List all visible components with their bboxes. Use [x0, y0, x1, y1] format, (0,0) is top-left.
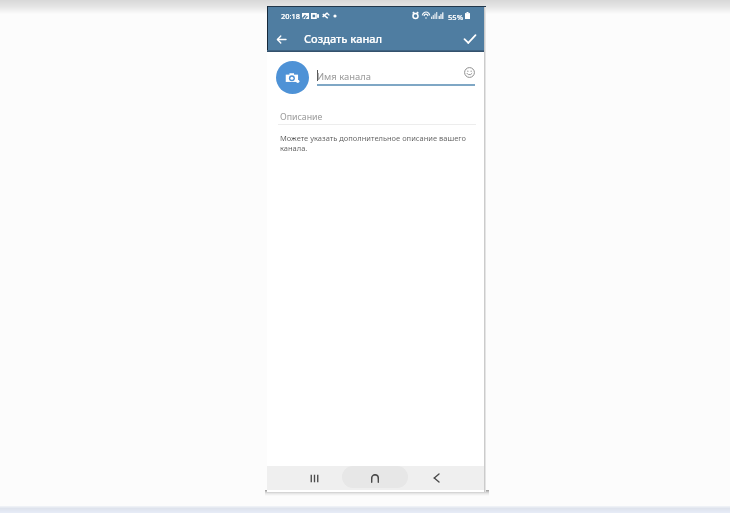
staticText: Создать канал [304, 31, 383, 46]
button[interactable]: Back [415, 466, 458, 490]
staticText: Имя канала [317, 70, 371, 83]
button[interactable]: Emoji [463, 66, 476, 79]
button[interactable]: Home [342, 466, 408, 490]
button[interactable]: Set channel photo [276, 61, 309, 94]
button[interactable]: Back [270, 28, 292, 50]
staticText: Описание [280, 111, 323, 123]
button[interactable]: Recent apps [293, 466, 336, 490]
button[interactable]: Create channel [459, 28, 481, 50]
staticText: 55% [448, 12, 464, 22]
button[interactable]: Имя канала [316, 66, 461, 86]
staticText: Можете указать дополнительное описание в… [280, 133, 466, 153]
staticText: 20:18 [281, 11, 300, 21]
